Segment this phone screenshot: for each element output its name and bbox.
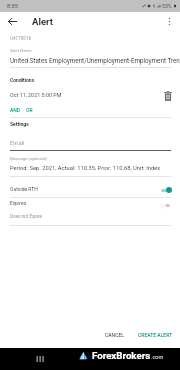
button[interactable]: More options (161, 13, 177, 29)
staticText: CANCEL (105, 332, 124, 338)
button[interactable]: AND (10, 107, 21, 113)
staticText: 8:35 (7, 3, 18, 10)
staticText: Expires (10, 200, 27, 206)
staticText: Message (optional) (10, 156, 48, 161)
button[interactable]: CREATE ALERT (135, 329, 176, 341)
staticText: Conditions (10, 77, 35, 83)
staticText: Outside RTH (10, 186, 38, 192)
staticText: Oct 11, 2021 5:00 PM (10, 92, 62, 98)
staticText: ForexBrokers (92, 350, 151, 361)
staticText: AND (10, 107, 21, 113)
button[interactable]: Delete condition (161, 89, 175, 103)
staticText: Settings (10, 121, 29, 127)
staticText: 53% (162, 3, 172, 9)
staticText: .com (151, 354, 164, 360)
staticText: Alert (32, 16, 53, 27)
staticText: Does not Expire (10, 214, 42, 219)
button[interactable]: OR (26, 107, 33, 113)
staticText: OR (26, 107, 33, 113)
button[interactable]: CANCEL (102, 329, 127, 341)
button[interactable]: Back (4, 13, 20, 29)
staticText: U4170616 (10, 36, 32, 41)
staticText: Period: Sep. 2021, Actual: 110.35, Prior… (10, 165, 161, 172)
staticText: Alert Name (10, 48, 32, 53)
staticText: CREATE ALERT (138, 332, 173, 338)
staticText: United States Employment/Unemployment-Em… (10, 57, 180, 64)
staticText: Email (10, 140, 25, 147)
